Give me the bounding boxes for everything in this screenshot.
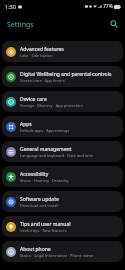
button[interactable]: Software update — [2, 191, 123, 212]
staticText: Apps — [20, 121, 32, 128]
staticText: Screen time · App timers — [20, 78, 65, 83]
staticText: Download and install — [20, 203, 59, 208]
button[interactable]: About phone — [2, 241, 123, 262]
button[interactable]: Advanced features — [2, 41, 123, 62]
staticText: Default apps · App settings — [20, 128, 70, 133]
button[interactable]: General management — [2, 141, 123, 162]
button[interactable]: Accessibility — [2, 166, 123, 187]
staticText: Storage · Memory · App protection — [20, 103, 83, 108]
button[interactable]: Search — [107, 17, 121, 31]
button[interactable]: Apps — [2, 116, 123, 137]
staticText: Device care — [20, 96, 47, 103]
button[interactable]: Digital Wellbeing and parental controls — [2, 66, 123, 87]
staticText: Accessibility — [20, 171, 49, 178]
button[interactable]: Tips and user manual — [2, 216, 123, 237]
staticText: 1:30 — [5, 3, 16, 10]
staticText: Software update — [20, 196, 59, 203]
staticText: Digital Wellbeing and parental controls — [20, 71, 112, 78]
button[interactable]: Device care — [2, 91, 123, 112]
staticText: 77% — [103, 3, 113, 10]
staticText: About phone — [20, 246, 51, 253]
staticText: Status · Legal information · Phone name — [20, 253, 94, 258]
staticText: Language and keyboard · Date and time — [20, 153, 94, 158]
staticText: Vision · Hearing · Dexterity — [20, 178, 69, 183]
staticText: Labs · Side button — [20, 53, 53, 58]
staticText: Useful tips · New features — [20, 228, 67, 233]
staticText: Advanced features — [20, 46, 64, 53]
staticText: Tips and user manual — [20, 221, 71, 228]
staticText: General management — [20, 146, 72, 153]
staticText: Settings — [7, 20, 34, 30]
